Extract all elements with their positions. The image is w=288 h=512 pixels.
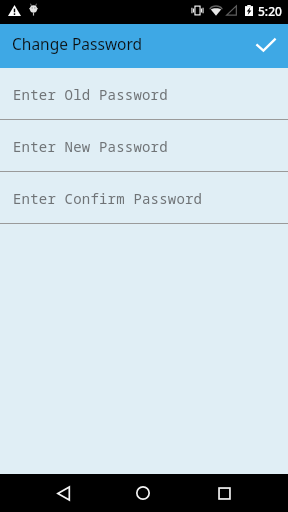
staticText: Enter Confirm Password [13,189,203,208]
button[interactable]: Enter Confirm Password [0,172,288,224]
button[interactable]: Home [119,474,167,512]
button[interactable]: Enter Old Password [0,68,288,120]
staticText: Enter New Password [13,137,168,156]
staticText: Enter Old Password [13,85,168,104]
button[interactable]: Enter New Password [0,120,288,172]
button[interactable]: Change Password [0,24,288,68]
button[interactable]: Back [40,474,88,512]
button[interactable]: Recent apps [200,474,248,512]
staticText: Change Password [12,33,143,54]
staticText: 5:20 [258,3,282,19]
button[interactable]: Save password [248,28,284,64]
